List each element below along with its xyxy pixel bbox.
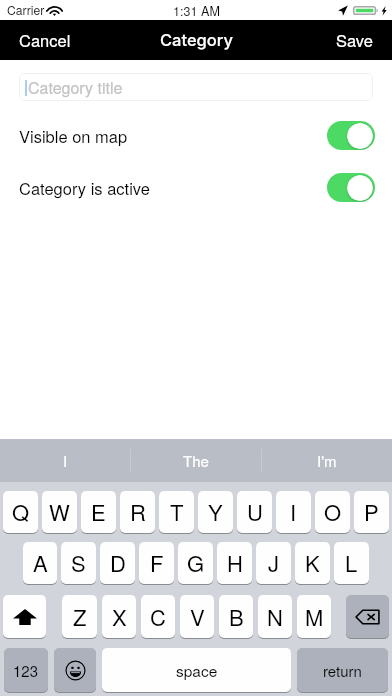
button[interactable]: Shift [3, 595, 46, 638]
button[interactable]: Visible on map [0, 121, 392, 150]
staticText: K [305, 547, 320, 579]
staticText: U [247, 496, 263, 528]
staticText: 1:31 AM [173, 2, 220, 20]
button[interactable]: Toggle [327, 121, 375, 150]
staticText: C [150, 601, 166, 633]
staticText: space [176, 659, 218, 681]
button[interactable]: Q [3, 491, 38, 533]
button[interactable]: Backspace [346, 595, 389, 638]
staticText: H [227, 547, 243, 579]
staticText: W [49, 496, 70, 528]
button[interactable]: S [61, 542, 96, 584]
button[interactable]: I [0, 439, 130, 482]
button[interactable]: Cancel [0, 20, 100, 60]
button[interactable]: Save [292, 20, 392, 60]
staticText: T [170, 496, 184, 528]
staticText: N [267, 601, 283, 633]
button[interactable]: R [120, 491, 155, 533]
button[interactable]: Category is active [0, 173, 392, 202]
staticText: P [364, 496, 379, 528]
button[interactable]: T [159, 491, 194, 533]
staticText: M [305, 601, 324, 633]
staticText: Z [73, 601, 87, 633]
staticText: The [183, 450, 209, 471]
button[interactable]: K [295, 542, 330, 584]
button[interactable]: H [217, 542, 252, 584]
staticText: Q [12, 496, 30, 528]
staticText: F [150, 547, 164, 579]
staticText: Visible on map [19, 124, 128, 148]
button[interactable]: O [315, 491, 350, 533]
button[interactable]: space [102, 648, 291, 692]
staticText: I [63, 450, 68, 471]
staticText: E [91, 496, 106, 528]
button[interactable]: D [100, 542, 135, 584]
staticText: 123 [13, 660, 39, 681]
staticText: I [290, 496, 297, 528]
staticText: L [345, 547, 358, 579]
button[interactable]: L [334, 542, 369, 584]
staticText: Category title [28, 76, 123, 99]
button[interactable]: I'm [262, 439, 392, 482]
button[interactable]: Z [62, 595, 97, 638]
button[interactable]: return [297, 648, 388, 692]
button[interactable]: Y [198, 491, 233, 533]
staticText: return [323, 660, 362, 681]
button[interactable]: F [139, 542, 174, 584]
staticText: D [110, 547, 126, 579]
button[interactable]: V [180, 595, 214, 638]
staticText: J [268, 547, 280, 579]
button[interactable]: W [42, 491, 77, 533]
button[interactable]: X [102, 595, 136, 638]
button[interactable]: C [141, 595, 175, 638]
staticText: S [71, 547, 86, 579]
button[interactable]: 123 [4, 648, 48, 692]
staticText: Y [208, 496, 223, 528]
staticText: O [324, 496, 342, 528]
button[interactable]: Toggle [327, 173, 375, 202]
staticText: Carrier [7, 1, 45, 18]
staticText: G [187, 547, 205, 579]
button[interactable]: A [23, 542, 57, 584]
staticText: X [112, 601, 127, 633]
staticText: V [190, 601, 205, 633]
staticText: I'm [317, 450, 337, 471]
staticText: Save [336, 28, 373, 52]
button[interactable]: Emoji [54, 648, 96, 692]
button[interactable]: The [131, 439, 261, 482]
button[interactable]: M [297, 595, 331, 638]
staticText: A [33, 547, 48, 579]
staticText: R [130, 496, 146, 528]
button[interactable]: B [219, 595, 253, 638]
button[interactable]: J [256, 542, 291, 584]
button[interactable]: E [81, 491, 116, 533]
staticText: Category [160, 30, 233, 50]
staticText: Cancel [19, 28, 71, 52]
staticText: B [229, 601, 244, 633]
button[interactable]: U [237, 491, 272, 533]
button[interactable]: Category title [19, 73, 373, 101]
staticText: Category is active [19, 176, 150, 200]
button[interactable]: N [258, 595, 292, 638]
button[interactable]: I [276, 491, 311, 533]
button[interactable]: G [178, 542, 213, 584]
button[interactable]: P [354, 491, 389, 533]
